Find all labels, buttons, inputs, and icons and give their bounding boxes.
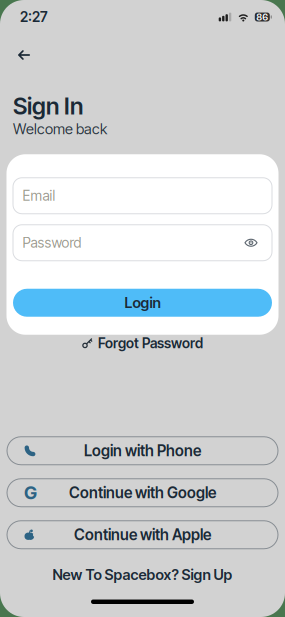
staticText: 86 <box>256 11 268 23</box>
button[interactable] <box>244 238 258 248</box>
staticText: Login <box>124 294 160 312</box>
button[interactable] <box>18 50 30 60</box>
button[interactable]: Continue with Google <box>7 479 278 507</box>
staticText: G <box>24 482 37 504</box>
staticText: Forgot Password <box>98 335 203 351</box>
textField[interactable]: Email <box>22 187 272 204</box>
button[interactable]: Continue with Apple <box>7 521 278 549</box>
staticText: Password <box>22 234 81 251</box>
staticText: 2:27 <box>20 8 48 25</box>
staticText: Email <box>22 187 55 204</box>
staticText: New To Spacebox? Sign Up <box>52 566 232 583</box>
staticText: Sign In <box>13 92 83 120</box>
staticText: Login with Phone <box>84 442 201 460</box>
staticText: Continue with Apple <box>74 526 211 544</box>
button[interactable]: Login with Phone <box>7 437 278 465</box>
button[interactable]: New To Spacebox? Sign Up <box>52 566 232 583</box>
button[interactable]: Login <box>13 289 272 317</box>
button[interactable]: Forgot Password <box>82 335 203 351</box>
staticText: Welcome back <box>13 120 107 138</box>
staticText: Continue with Google <box>69 484 216 502</box>
secureTextField[interactable]: Password <box>22 234 244 251</box>
